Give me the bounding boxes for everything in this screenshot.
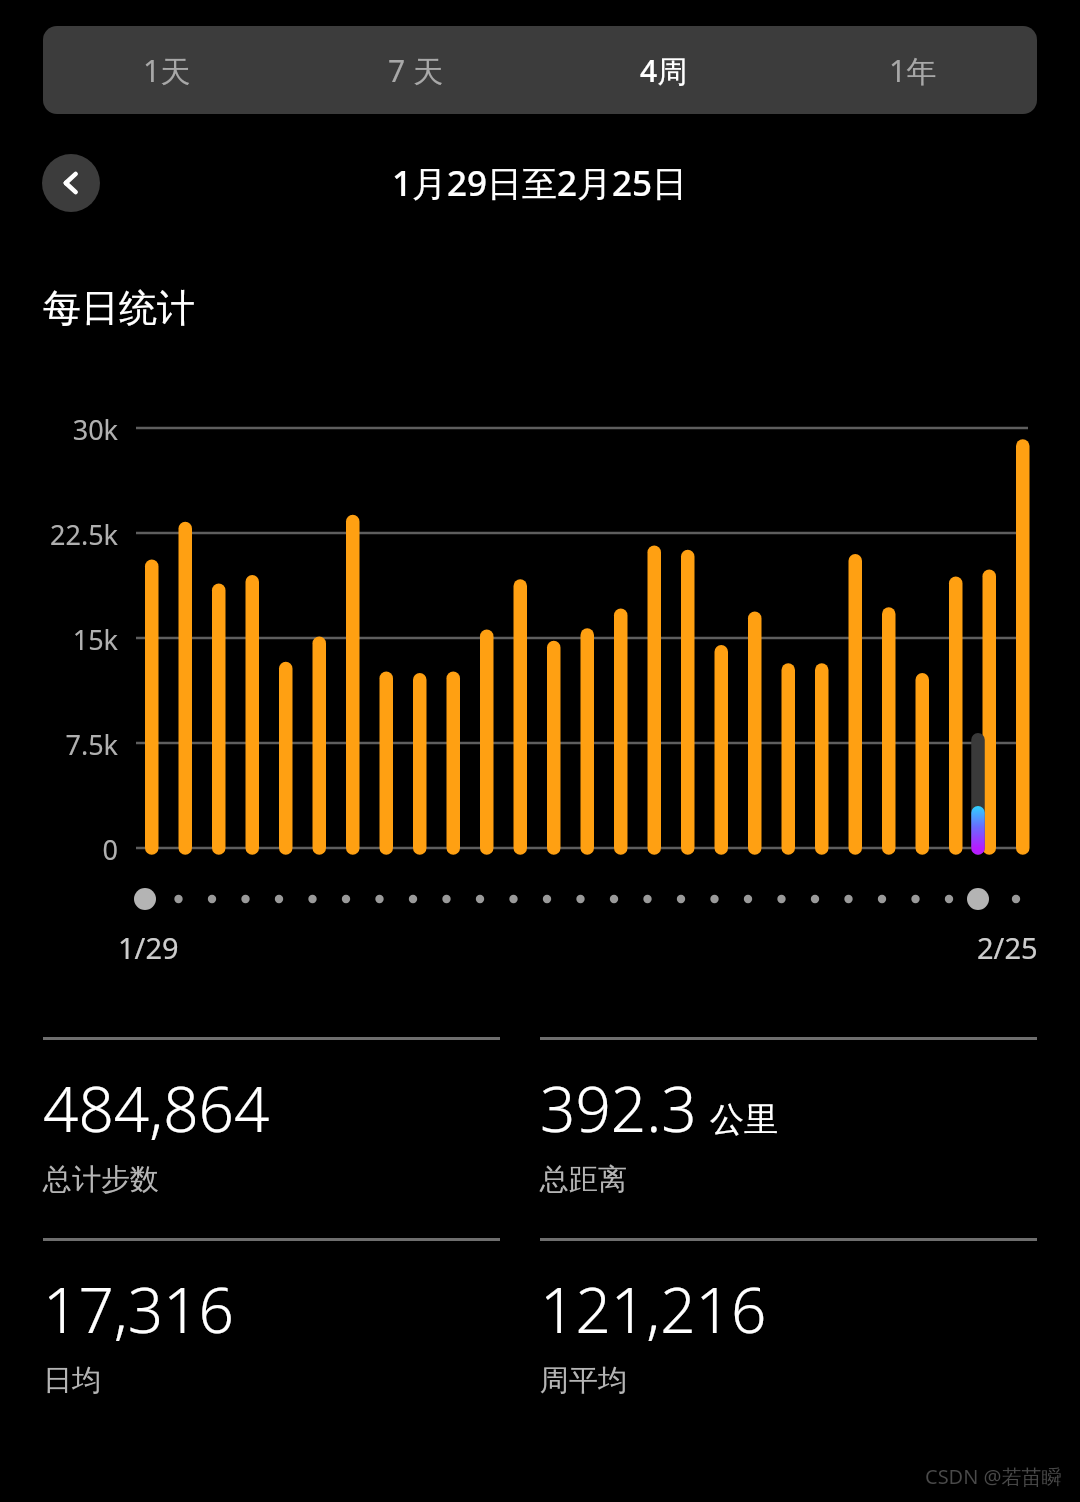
staticText: 日均 [43,1362,101,1399]
staticText: 2/25 [977,928,1038,967]
staticText: 1月29日至2月25日 [392,159,688,207]
staticText: 22.5k [0,516,118,553]
staticText: 总距离 [540,1161,627,1198]
button[interactable]: 1年 [788,26,1037,114]
staticText: 1/29 [118,928,179,967]
button[interactable]: 1天 [43,26,291,114]
staticText: 1天 [143,50,191,91]
button[interactable]: 7 天 [291,26,539,114]
staticText: 总计步数 [43,1161,159,1198]
staticText: 1年 [889,50,937,91]
staticText: 484,864 [43,1066,270,1150]
staticText: 周平均 [540,1362,627,1399]
button[interactable]: 4周 [539,26,788,114]
button[interactable]: 121,216 [540,1238,1037,1399]
staticText: 7 天 [388,50,443,91]
button[interactable]: 17,316 [43,1238,500,1399]
button[interactable]: Back [42,154,100,212]
button[interactable]: 392.3 [540,1037,1037,1198]
staticText: 17,316 [43,1267,234,1351]
staticText: 4周 [640,50,688,91]
staticText: 392.3 [540,1066,697,1150]
staticText: 15k [0,621,118,658]
button[interactable]: 484,864 [43,1037,500,1198]
staticText: 每日统计 [43,284,195,332]
staticText: 7.5k [0,726,118,763]
staticText: 30k [0,411,118,448]
staticText: 公里 [710,1098,778,1141]
staticText: 0 [0,831,118,868]
staticText: CSDN @若苗瞬 [925,1463,1062,1490]
staticText: 121,216 [540,1267,767,1351]
